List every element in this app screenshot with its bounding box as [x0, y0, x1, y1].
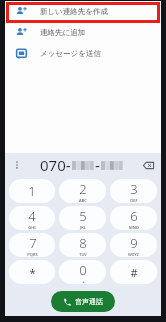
staticText: 新しい連絡先を作成 — [40, 7, 109, 16]
button[interactable]: Backspace — [135, 153, 161, 177]
button[interactable]: 5 — [59, 206, 106, 230]
staticText: GHI — [28, 225, 36, 230]
button[interactable]: 連絡先に追加 — [5, 22, 161, 43]
staticText: 1 — [28, 182, 36, 200]
button[interactable]: 6 — [110, 206, 157, 230]
staticText: + — [82, 279, 85, 284]
staticText: 連絡先に追加 — [40, 28, 86, 37]
staticText: TUV — [79, 252, 87, 257]
button[interactable]: 2 — [59, 179, 106, 203]
button[interactable]: More options — [5, 153, 29, 177]
staticText: ABC — [79, 198, 87, 203]
staticText: PQRS — [27, 252, 38, 257]
staticText: 6 — [130, 207, 138, 225]
button[interactable]: 9 — [110, 233, 157, 257]
button[interactable]: * — [9, 260, 55, 284]
button[interactable]: 新しい連絡先を作成 — [5, 1, 161, 22]
button[interactable]: 0 — [59, 260, 106, 284]
staticText: 070- — [40, 155, 71, 175]
button[interactable]: 8 — [59, 233, 106, 257]
button[interactable]: 7 — [9, 233, 55, 257]
staticText: DEF — [130, 198, 138, 203]
staticText: 9 — [130, 234, 138, 252]
staticText: 5 — [79, 207, 87, 225]
staticText: * — [29, 265, 36, 280]
staticText: 4 — [28, 207, 36, 225]
staticText: 7 — [29, 234, 37, 252]
button[interactable]: 3 — [110, 179, 157, 203]
staticText: # — [130, 265, 138, 280]
staticText: 8 — [79, 234, 87, 252]
staticText: JKL — [80, 225, 86, 230]
staticText: 0 — [79, 261, 87, 279]
button[interactable]: 4 — [9, 206, 55, 230]
button[interactable]: 音声通話 — [51, 291, 115, 312]
button[interactable]: メッセージを送信 — [5, 43, 161, 64]
staticText: 2 — [79, 180, 87, 198]
staticText: 音声通話 — [75, 297, 103, 306]
staticText: - — [95, 155, 100, 175]
button[interactable]: # — [110, 260, 157, 284]
button[interactable]: 1 — [9, 179, 55, 203]
staticText: メッセージを送信 — [40, 49, 101, 58]
staticText: WXYZ — [128, 252, 139, 257]
staticText: MNO — [129, 225, 139, 230]
staticText: 3 — [130, 180, 138, 198]
